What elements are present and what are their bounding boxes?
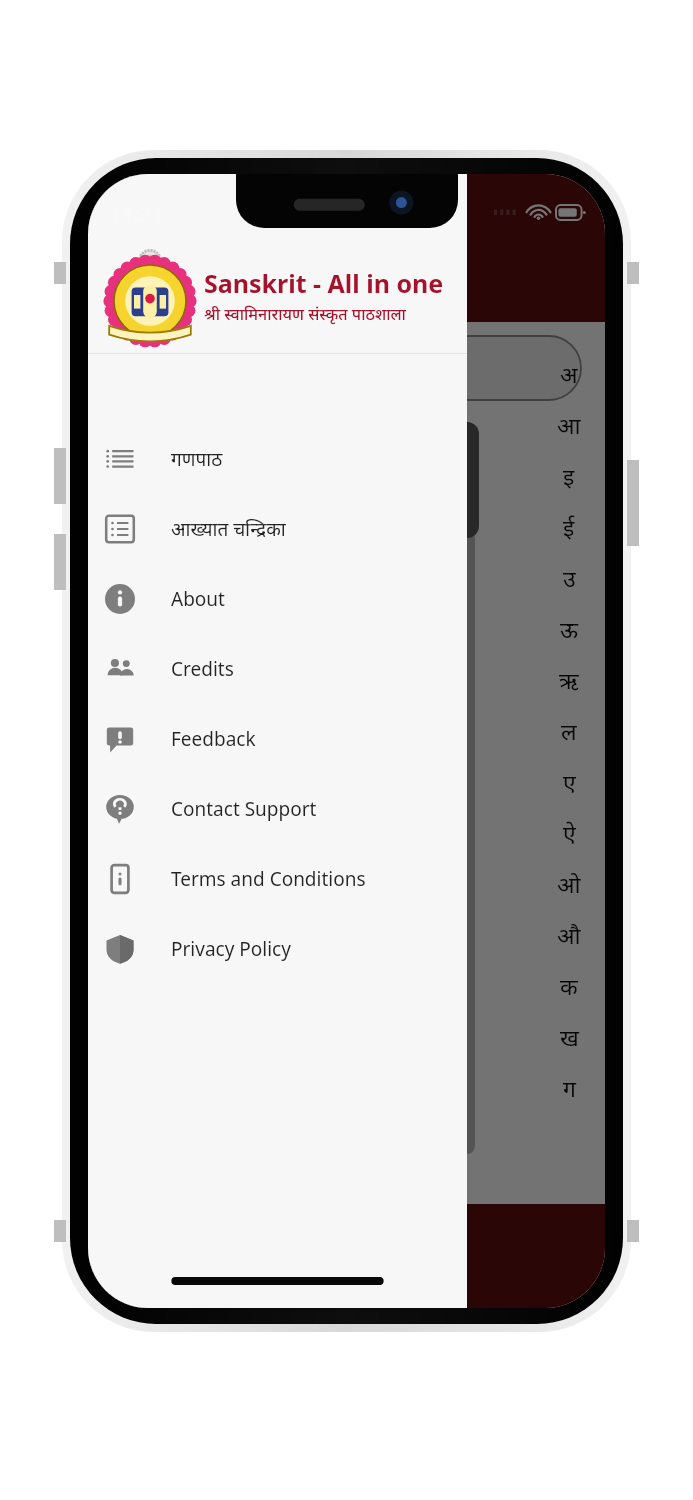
staticText: ई	[563, 511, 575, 542]
staticText: क	[560, 970, 578, 1001]
staticText: ख	[560, 1021, 579, 1052]
staticText: ऋ	[559, 664, 579, 695]
staticText: आ	[557, 409, 581, 440]
staticText: Credits	[171, 656, 234, 682]
staticText: गणपाठ	[171, 446, 223, 472]
button[interactable]: Privacy Policy	[88, 914, 467, 984]
button[interactable]: Feedback	[88, 704, 467, 774]
staticText: ए	[563, 766, 576, 797]
staticText: ल	[561, 715, 577, 746]
staticText: Privacy Policy	[171, 936, 291, 962]
staticText: ऐ	[563, 817, 576, 848]
staticText: About	[171, 586, 225, 612]
staticText: औ	[557, 919, 581, 950]
staticText: इ	[563, 460, 575, 491]
staticText: Contact Support	[171, 796, 317, 822]
staticText: ऊ	[560, 613, 579, 644]
staticText: Sanskrit - All in one	[204, 266, 444, 300]
staticText: ओ	[557, 868, 581, 899]
button[interactable]: About	[88, 564, 467, 634]
button[interactable]: Contact Support	[88, 774, 467, 844]
button[interactable]: Terms and Conditions	[88, 844, 467, 914]
button[interactable]: अष्टाध्यायी	[88, 1204, 605, 1308]
button[interactable]: गणपाठ	[88, 424, 467, 494]
button[interactable]: Credits	[88, 634, 467, 704]
staticText: ग	[563, 1072, 576, 1103]
button[interactable]: आख्यात चन्द्रिका	[88, 494, 467, 564]
staticText: Terms and Conditions	[171, 866, 366, 892]
staticText: श्री स्वामिनारायण संस्कृत पाठशाला	[204, 303, 406, 325]
staticText: Feedback	[171, 726, 256, 752]
staticText: अ	[560, 358, 578, 389]
staticText: आख्यात चन्द्रिका	[171, 516, 286, 542]
staticText: उ	[563, 562, 576, 593]
